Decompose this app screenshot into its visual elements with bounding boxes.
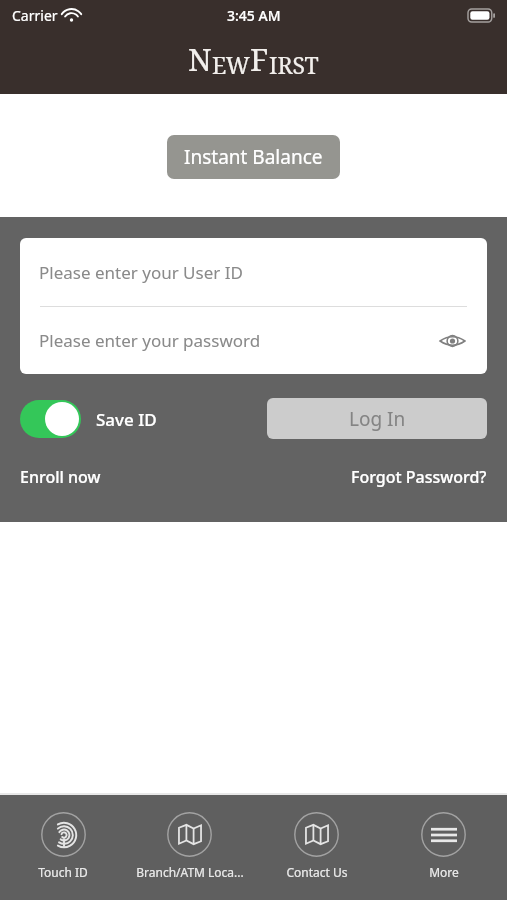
staticText: Please enter your User ID [39, 261, 243, 284]
button[interactable]: Instant Balance [167, 135, 340, 179]
staticText: 3:45 AM [227, 6, 281, 25]
staticText: Save ID [96, 408, 157, 431]
button[interactable]: Contact Us [253, 795, 380, 900]
staticText: IRST [269, 49, 319, 80]
button[interactable]: Please enter your User ID [20, 238, 487, 306]
staticText: Enroll now [20, 466, 101, 488]
staticText: Touch ID [38, 864, 88, 880]
button[interactable]: Please enter your password [20, 307, 487, 374]
staticText: Carrier [12, 6, 58, 25]
staticText: N [188, 38, 212, 80]
staticText: F [250, 38, 269, 80]
staticText: Contact Us [286, 864, 348, 880]
button[interactable]: Enroll now [20, 466, 101, 488]
button[interactable]: Touch ID [0, 795, 126, 900]
staticText: Log In [349, 406, 406, 432]
button[interactable]: Save ID toggle [20, 400, 81, 438]
button[interactable]: Branch/ATM Loca... [126, 795, 253, 900]
button[interactable]: Save ID toggle [20, 400, 157, 438]
staticText: Please enter your password [39, 329, 261, 352]
button[interactable]: Forgot Password? [351, 466, 487, 488]
staticText: More [429, 864, 459, 880]
button[interactable]: Log In [267, 398, 487, 439]
staticText: Instant Balance [184, 144, 323, 170]
button[interactable]: More [380, 795, 507, 900]
staticText: EW [212, 49, 250, 80]
staticText: Forgot Password? [351, 466, 487, 488]
button[interactable]: Show password [437, 326, 467, 356]
staticText: Branch/ATM Loca... [136, 864, 244, 880]
